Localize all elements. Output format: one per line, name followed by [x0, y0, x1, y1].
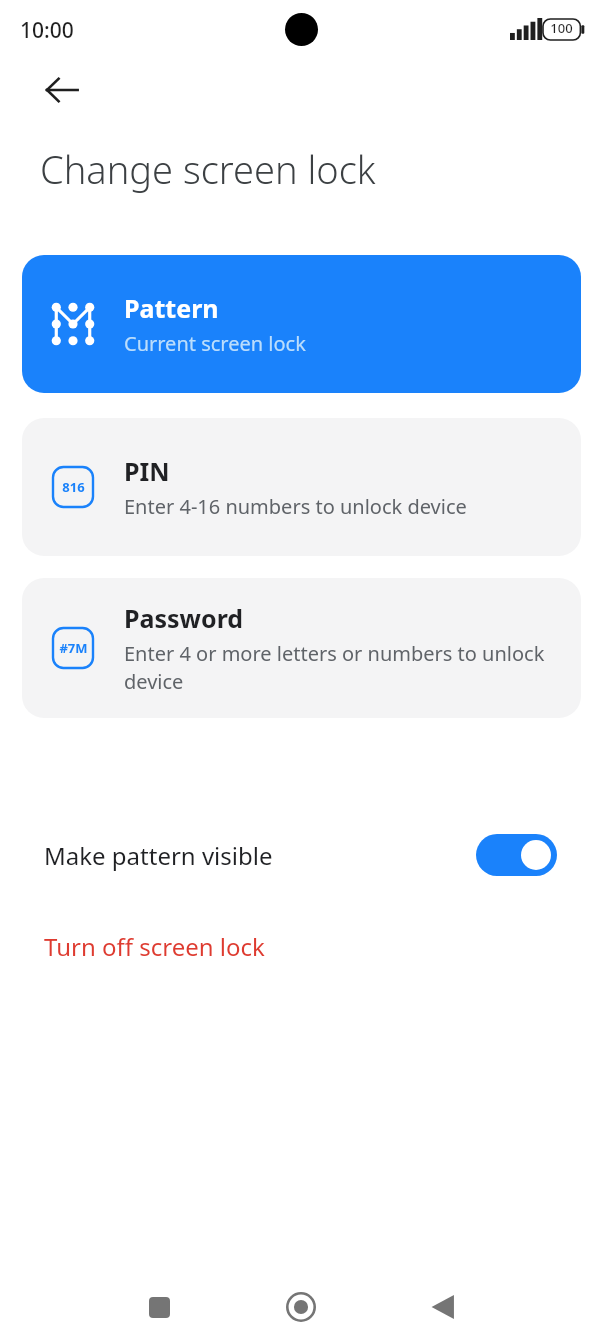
button[interactable]: Pattern: [22, 255, 581, 393]
button[interactable]: Turn off screen lock: [0, 915, 603, 977]
staticText: Enter 4-16 numbers to unlock device: [124, 493, 467, 520]
staticText: #7M: [59, 639, 88, 657]
button[interactable]: Back: [34, 62, 90, 118]
button[interactable]: Recent apps: [130, 1278, 188, 1336]
button[interactable]: Back: [414, 1278, 472, 1336]
staticText: PIN: [124, 454, 170, 488]
staticText: 100: [543, 19, 580, 40]
button[interactable]: Home: [272, 1278, 330, 1336]
staticText: Pattern: [124, 291, 219, 325]
staticText: Current screen lock: [124, 330, 306, 357]
staticText: Turn off screen lock: [44, 930, 265, 963]
button[interactable]: Make pattern visible: [0, 820, 603, 890]
staticText: 816: [62, 478, 85, 496]
staticText: 10:00: [20, 16, 74, 45]
staticText: Password: [124, 601, 244, 635]
staticText: Make pattern visible: [44, 839, 273, 872]
button[interactable]: #7M: [22, 578, 581, 718]
button[interactable]: 816: [22, 418, 581, 556]
staticText: Change screen lock: [40, 143, 376, 195]
staticText: Enter 4 or more letters or numbers to un…: [124, 640, 554, 695]
